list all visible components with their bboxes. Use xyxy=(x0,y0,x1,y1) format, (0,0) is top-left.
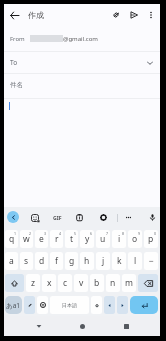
staticText: o xyxy=(132,233,138,245)
staticText: − xyxy=(149,255,154,267)
button[interactable]: g xyxy=(65,252,78,270)
button[interactable]: Shift xyxy=(5,274,24,292)
staticText: 作成 xyxy=(28,10,44,20)
staticText: 3 xyxy=(44,231,47,236)
staticText: 8 xyxy=(122,231,125,236)
button[interactable]: d xyxy=(35,252,48,270)
staticText: x xyxy=(47,277,52,289)
staticText: To xyxy=(10,58,18,67)
button[interactable]: s xyxy=(20,252,33,270)
staticText: 4 xyxy=(59,231,62,236)
staticText: あa1 xyxy=(6,301,21,310)
button[interactable]: w xyxy=(20,230,33,248)
button[interactable]: o xyxy=(128,230,142,248)
button[interactable]: 日本語 xyxy=(50,296,89,314)
button[interactable]: a xyxy=(5,252,18,270)
staticText: g xyxy=(69,255,75,267)
button[interactable]: Backspace xyxy=(138,274,158,292)
staticText: v xyxy=(79,277,84,289)
button[interactable]: Attach file xyxy=(107,6,125,24)
button[interactable]: − xyxy=(144,252,158,270)
button[interactable]: Cursor right xyxy=(117,296,128,314)
staticText: p xyxy=(148,233,154,245)
staticText: w xyxy=(23,233,30,245)
button[interactable]: あa1 xyxy=(5,296,22,314)
button[interactable]: Clipboard xyxy=(73,207,85,228)
staticText: n xyxy=(110,277,116,289)
button[interactable]: Cursor left xyxy=(104,296,115,314)
button[interactable]: Previous xyxy=(7,211,19,223)
staticText: l xyxy=(134,255,137,267)
button[interactable]: Close keyboard xyxy=(30,317,48,335)
button[interactable] xyxy=(24,296,35,314)
button[interactable]: m xyxy=(122,274,136,292)
button[interactable]: Home xyxy=(73,317,91,335)
staticText: k xyxy=(117,255,122,267)
staticText: @gmail.com xyxy=(63,35,98,43)
button[interactable]: e xyxy=(35,230,48,248)
staticText: d xyxy=(39,255,45,267)
staticText: 6 xyxy=(90,231,93,236)
button[interactable]: Emoji xyxy=(29,207,41,228)
button[interactable]: p xyxy=(144,230,158,248)
button[interactable]: Recent apps xyxy=(117,317,135,335)
staticText: 2 xyxy=(29,231,32,236)
staticText: u xyxy=(100,233,106,245)
button[interactable]: More options xyxy=(143,7,159,23)
staticText: i xyxy=(118,233,121,245)
button[interactable]: z xyxy=(26,274,40,292)
staticText: f xyxy=(55,255,58,267)
staticText: a xyxy=(9,255,14,267)
button[interactable]: Emoji xyxy=(37,296,48,314)
staticText: 件名 xyxy=(10,81,23,89)
button[interactable]: Settings xyxy=(97,207,109,228)
button[interactable]: q xyxy=(5,230,18,248)
button[interactable]: r xyxy=(50,230,63,248)
staticText: 日本語 xyxy=(62,302,77,308)
staticText: y xyxy=(85,233,90,245)
staticText: b xyxy=(94,277,100,289)
button[interactable]: j xyxy=(96,252,110,270)
button[interactable]: Voice input xyxy=(146,207,158,228)
staticText: 7 xyxy=(106,231,109,236)
button[interactable]: GIF xyxy=(50,207,64,228)
button[interactable]: f xyxy=(50,252,63,270)
button[interactable]: k xyxy=(112,252,126,270)
staticText: r xyxy=(55,233,59,245)
button[interactable]: h xyxy=(80,252,94,270)
button[interactable]: y xyxy=(80,230,94,248)
button[interactable]: More xyxy=(122,207,134,228)
button[interactable] xyxy=(91,296,102,314)
staticText: q xyxy=(9,233,15,245)
staticText: GIF xyxy=(53,214,62,221)
staticText: z xyxy=(31,277,35,289)
staticText: s xyxy=(24,255,29,267)
button[interactable]: v xyxy=(74,274,88,292)
staticText: h xyxy=(84,255,90,267)
staticText: e xyxy=(39,233,44,245)
button[interactable]: u xyxy=(96,230,110,248)
staticText: m xyxy=(125,277,133,289)
staticText: c xyxy=(63,277,68,289)
button[interactable]: i xyxy=(112,230,126,248)
button[interactable]: n xyxy=(106,274,120,292)
button[interactable]: Send xyxy=(125,6,143,24)
button[interactable]: Expand recipients xyxy=(144,57,156,69)
staticText: 1 xyxy=(14,231,17,236)
staticText: j xyxy=(102,255,105,267)
button[interactable]: Back xyxy=(4,5,25,26)
staticText: 5 xyxy=(74,231,77,236)
staticText: 0 xyxy=(154,231,157,236)
button[interactable]: t xyxy=(65,230,78,248)
button[interactable]: x xyxy=(42,274,56,292)
staticText: From xyxy=(10,35,25,43)
button[interactable]: l xyxy=(128,252,142,270)
button[interactable]: b xyxy=(90,274,104,292)
staticText: t xyxy=(70,233,74,245)
button[interactable]: c xyxy=(58,274,72,292)
staticText: 9 xyxy=(138,231,141,236)
button[interactable]: Enter xyxy=(130,296,158,314)
